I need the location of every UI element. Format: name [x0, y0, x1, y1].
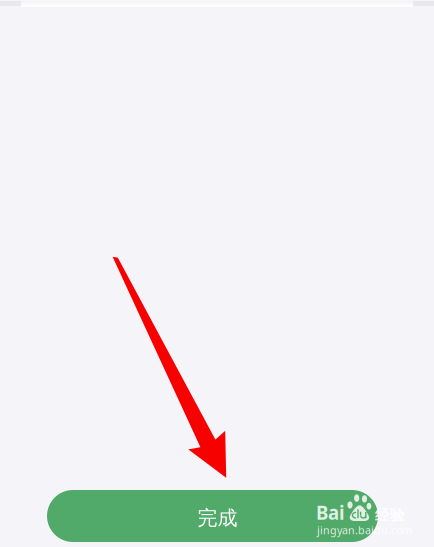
- button[interactable]: 完成: [47, 490, 378, 542]
- staticText: 完成: [197, 506, 237, 530]
- staticText: 经验: [375, 506, 405, 524]
- staticText: Bai: [316, 500, 345, 525]
- staticText: jingyan.baidu.com: [317, 523, 412, 537]
